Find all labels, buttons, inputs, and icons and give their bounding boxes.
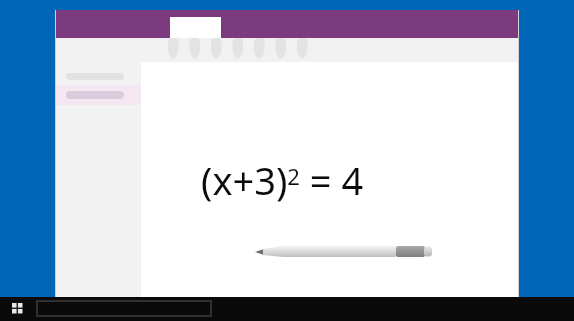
button[interactable]: (x+3)2 = 4 (201, 154, 413, 204)
button[interactable]: Start (6, 299, 30, 319)
button[interactable]: Selected page (56, 85, 141, 105)
button[interactable]: Page (56, 66, 141, 85)
button[interactable]: Search (37, 300, 212, 317)
staticText: (x+3)2 = 4 (201, 154, 364, 204)
